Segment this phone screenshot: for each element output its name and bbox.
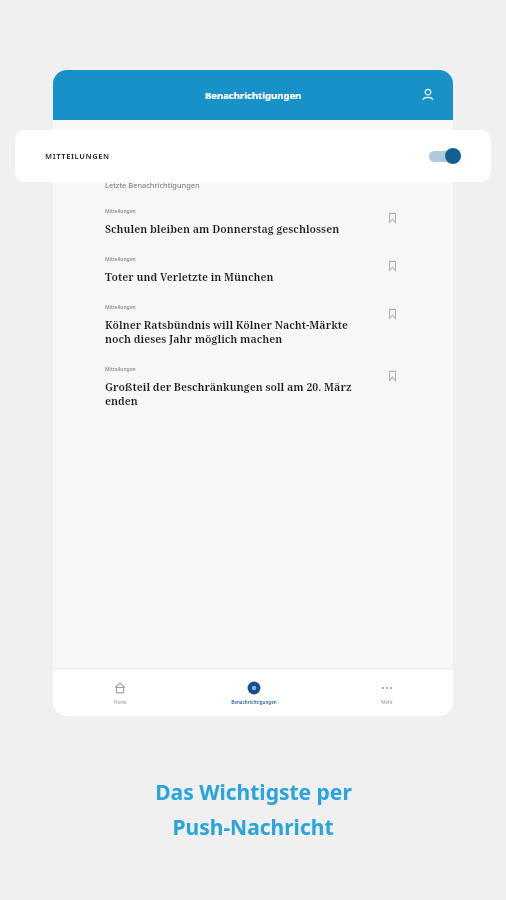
staticText: Letzte Benachrichtigungen	[105, 180, 200, 190]
staticText: Home	[114, 699, 127, 705]
button[interactable]: Account	[413, 80, 443, 110]
button[interactable]: MITTEILUNGEN	[15, 130, 491, 182]
staticText: Benachrichtigungen	[205, 89, 302, 102]
button[interactable]: Merken	[383, 257, 401, 275]
button[interactable]: Home	[53, 668, 187, 716]
button[interactable]: Mitteilungen	[105, 256, 401, 304]
button[interactable]: Merken	[383, 209, 401, 227]
staticText: Mitteilungen	[105, 304, 136, 311]
staticText: Großteil der Beschränkungen soll am 20. …	[105, 380, 373, 408]
button[interactable]: Mehr	[320, 668, 453, 716]
button[interactable]: Mitteilungen	[105, 304, 401, 366]
button[interactable]: Merken	[383, 367, 401, 385]
staticText: Das Wichtigste per	[155, 778, 352, 807]
button[interactable]: Merken	[383, 305, 401, 323]
staticText: Kölner Ratsbündnis will Kölner Nacht-Mär…	[105, 318, 373, 346]
button[interactable]: Benachrichtigungen	[187, 668, 320, 716]
staticText: Toter und Verletzte in München	[105, 270, 274, 284]
staticText: Mitteilungen	[105, 208, 136, 215]
staticText: Push-Nachricht	[172, 813, 334, 842]
staticText: Benachrichtigungen	[231, 699, 277, 705]
staticText: Schulen bleiben am Donnerstag geschlosse…	[105, 222, 340, 236]
button[interactable]: Mitteilungen	[105, 208, 401, 256]
staticText: Mehr	[381, 699, 393, 705]
staticText: Mitteilungen	[105, 366, 136, 373]
staticText: Mitteilungen	[105, 256, 136, 263]
button[interactable]: Mitteilungen Schalter	[427, 146, 461, 166]
staticText: MITTEILUNGEN	[45, 151, 110, 161]
button[interactable]: Mitteilungen	[105, 366, 401, 428]
